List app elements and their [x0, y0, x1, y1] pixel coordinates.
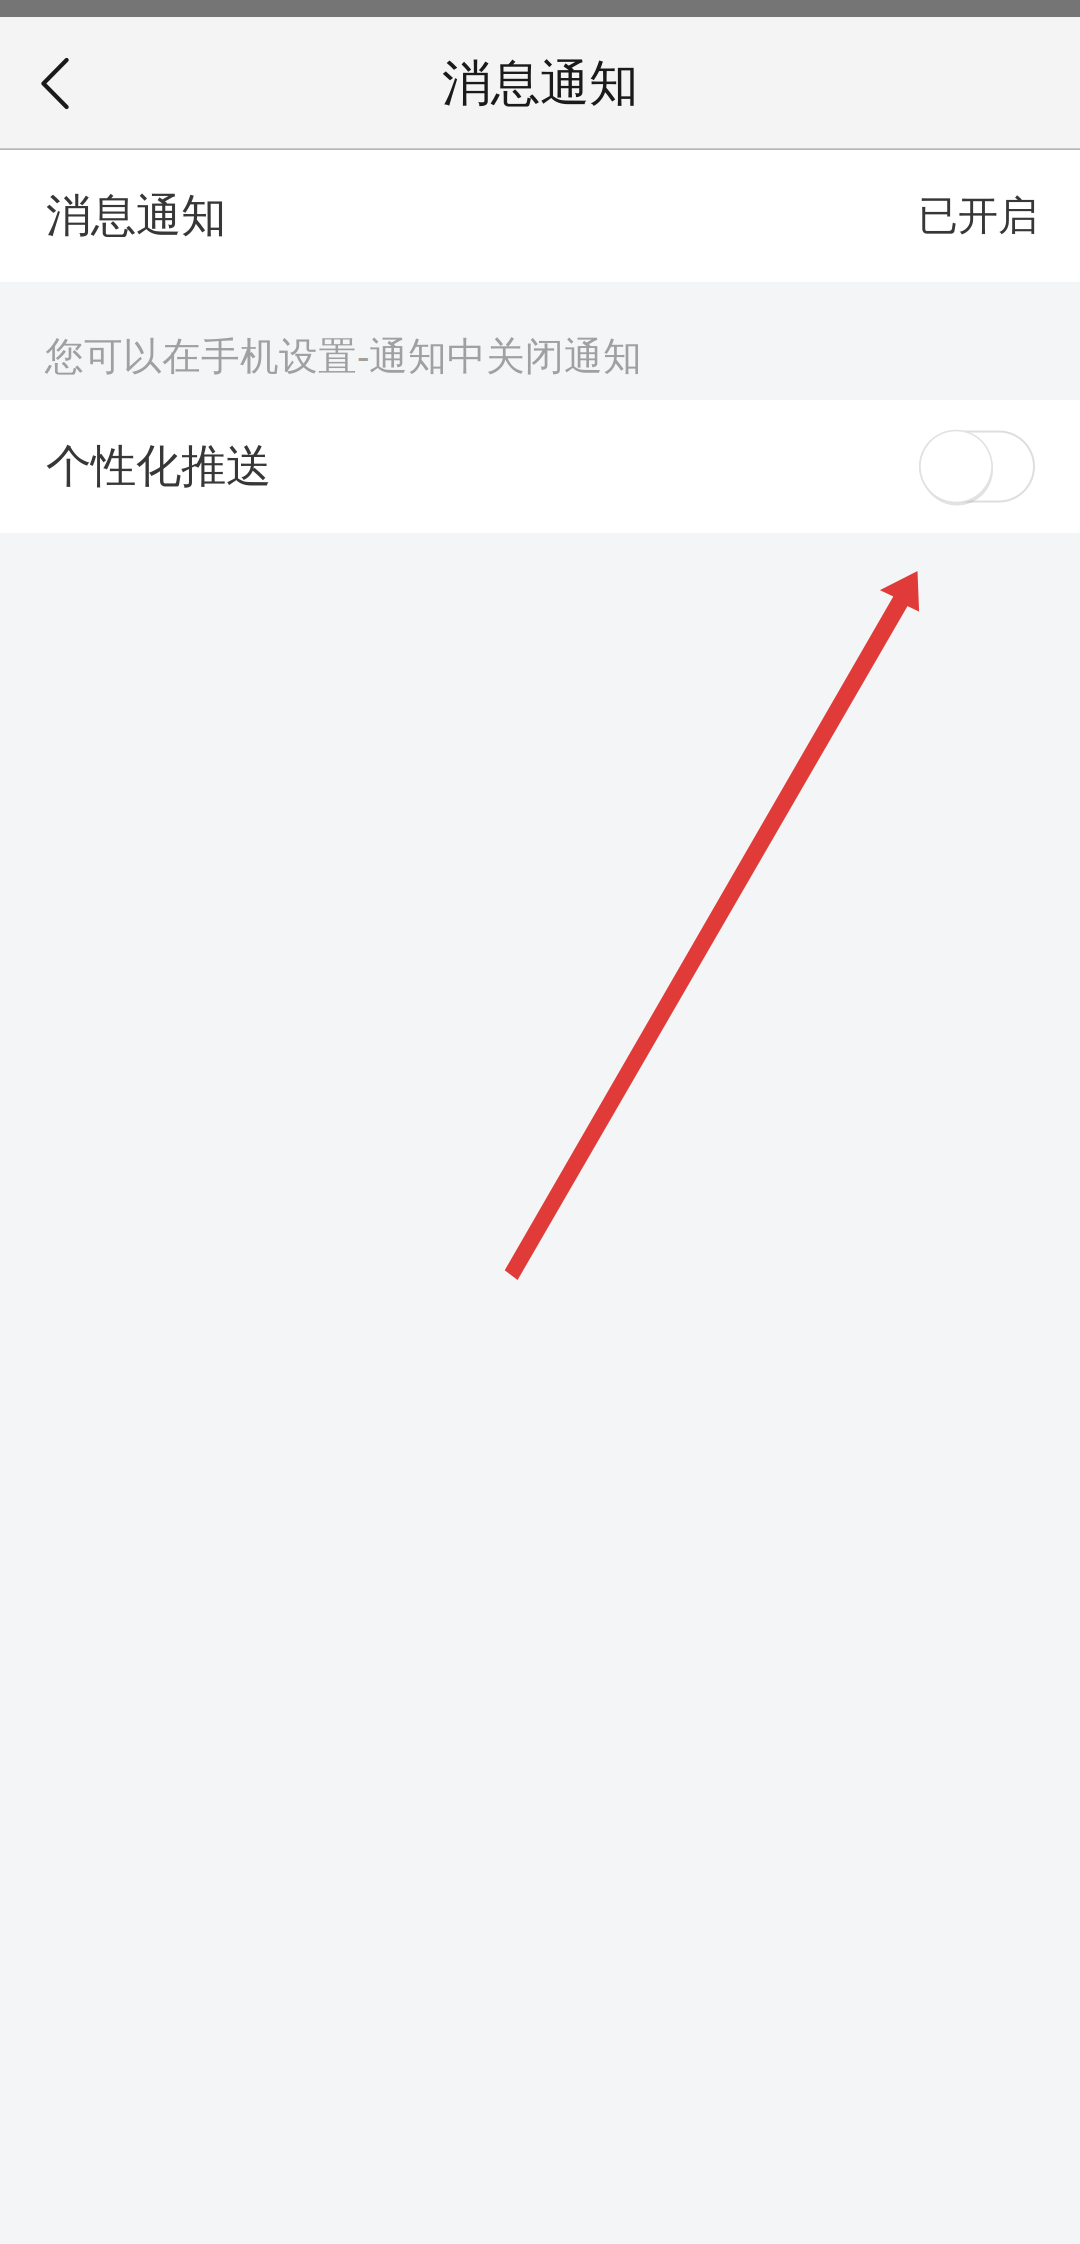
- staticText: 消息通知: [46, 188, 226, 244]
- staticText: 已开启: [918, 191, 1038, 240]
- button[interactable]: 消息通知: [0, 150, 1080, 282]
- staticText: 个性化推送: [46, 439, 271, 494]
- staticText: 您可以在手机设置-通知中关闭通知: [45, 329, 642, 381]
- button[interactable]: 个性化推送: [0, 400, 1080, 533]
- staticText: 消息通知: [442, 53, 638, 114]
- button[interactable]: 返回: [0, 20, 110, 147]
